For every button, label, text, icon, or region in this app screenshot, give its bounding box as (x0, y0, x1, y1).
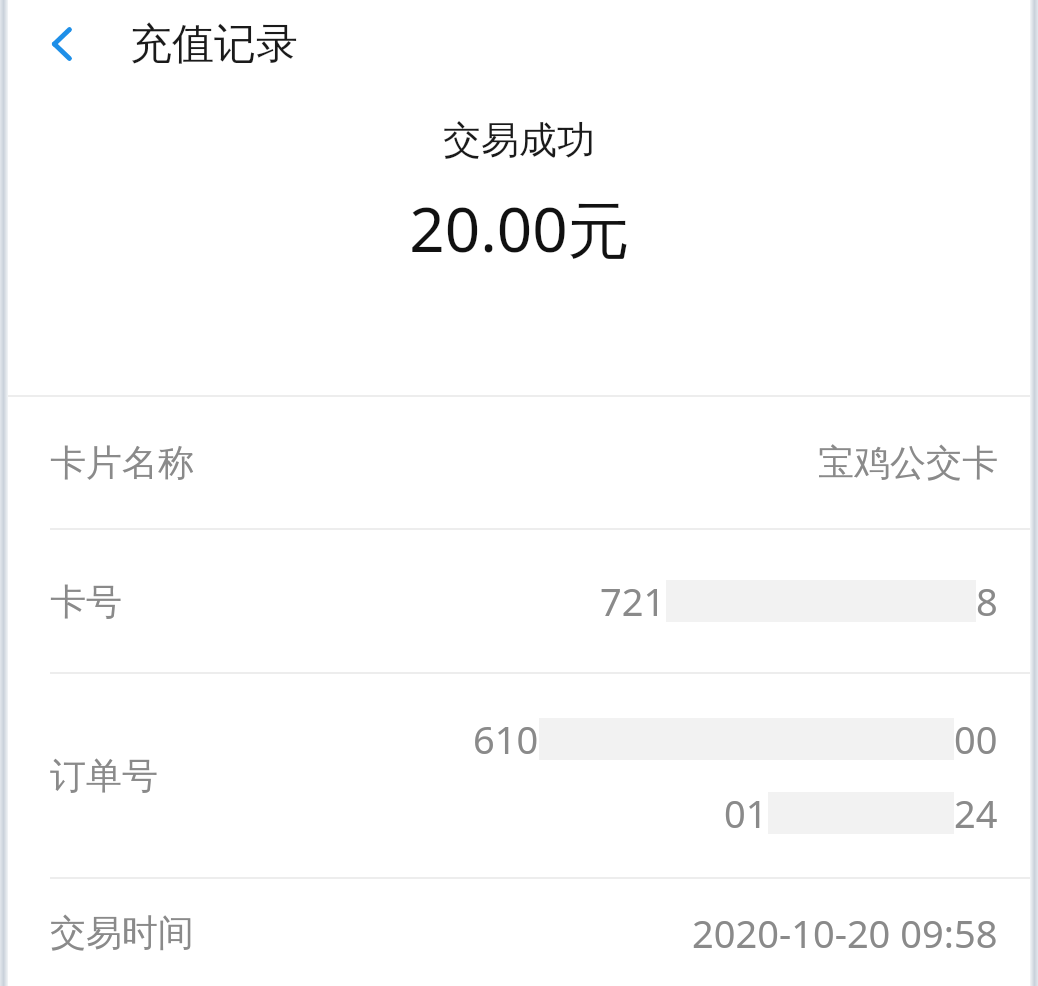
staticText: 00 (954, 713, 998, 765)
staticText: 交易成功 (443, 116, 595, 164)
staticText: 卡片名称 (50, 440, 194, 485)
staticText: 8 (976, 575, 998, 627)
staticText: 24 (954, 787, 998, 839)
staticText: 01 (724, 787, 768, 839)
button[interactable]: 订单号 (8, 674, 1030, 877)
button[interactable]: 交易时间 (8, 879, 1030, 986)
staticText: 2020-10-20 09:58 (692, 907, 998, 959)
staticText: 充值记录 (130, 18, 298, 71)
staticText: 订单号 (50, 753, 158, 798)
staticText: 交易时间 (50, 910, 194, 955)
staticText: 卡号 (50, 579, 122, 624)
button[interactable]: 卡片名称 (8, 397, 1030, 528)
staticText: 20.00元 (409, 186, 630, 271)
button[interactable]: Back (32, 13, 94, 75)
button[interactable]: 卡号 (8, 530, 1030, 672)
staticText: 宝鸡公交卡 (818, 440, 998, 485)
staticText: 610 (473, 713, 539, 765)
staticText: 721 (600, 575, 666, 627)
